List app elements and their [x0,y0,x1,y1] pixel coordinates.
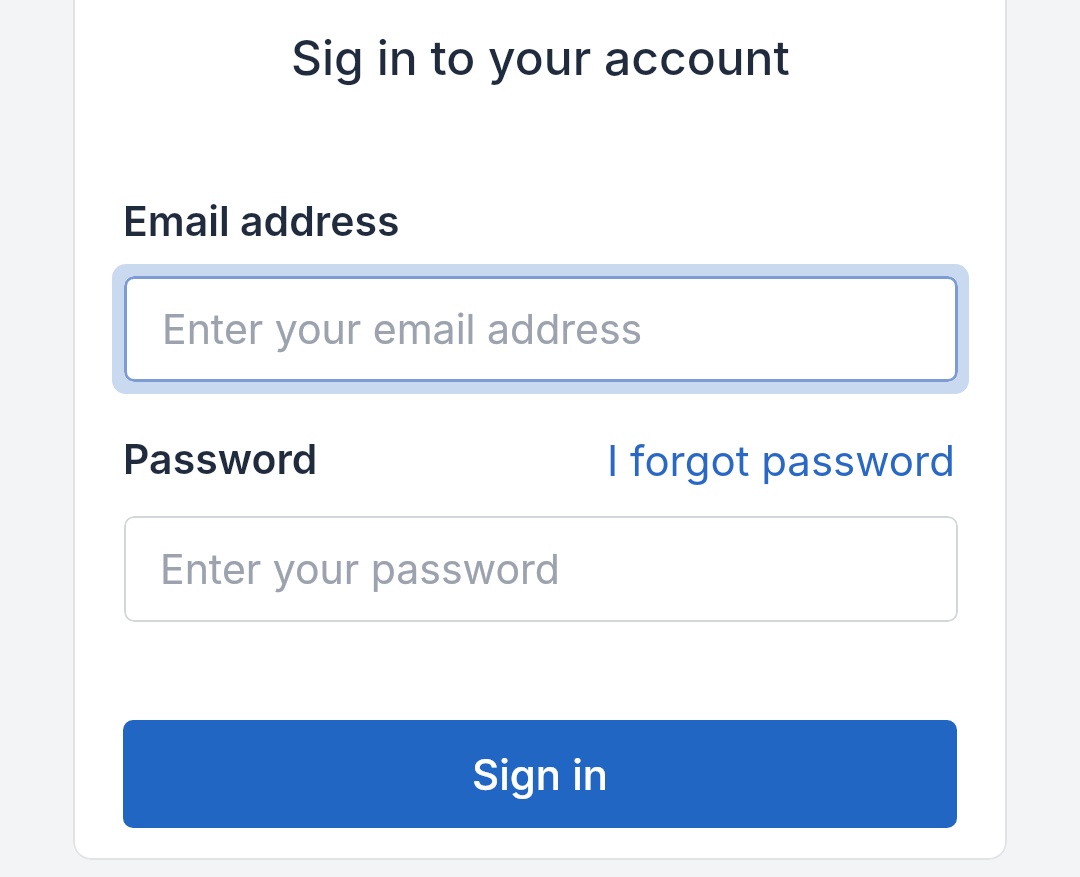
button[interactable]: Enter your email address [124,276,958,382]
staticText: Sig in to your account [291,28,790,86]
staticText: Sign in [472,749,609,800]
button[interactable]: I forgot password [607,435,955,486]
staticText: Enter your password [160,544,560,594]
button[interactable]: Sign in [123,720,957,828]
staticText: Enter your email address [162,304,643,354]
button[interactable]: Enter your password [124,516,958,622]
staticText: Email address [123,196,400,246]
staticText: Password [123,434,318,484]
